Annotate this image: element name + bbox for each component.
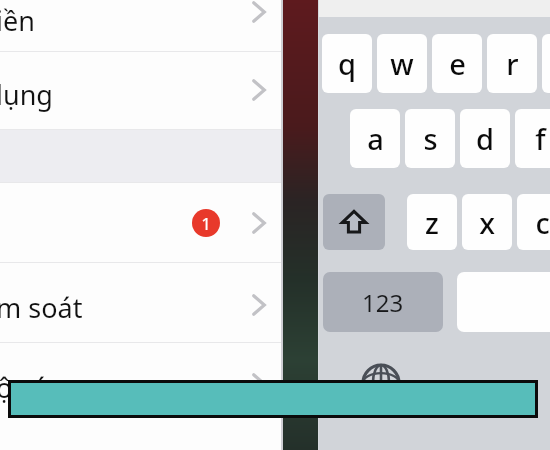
staticText: m soát xyxy=(0,289,83,326)
staticText: 1 xyxy=(201,212,211,235)
button[interactable]: w xyxy=(377,34,427,93)
button[interactable]: 1 xyxy=(0,183,284,263)
staticText: lụng xyxy=(0,76,53,113)
button[interactable]: 123 xyxy=(323,272,443,332)
staticText: x xyxy=(479,203,495,242)
button[interactable]: ộ sáng xyxy=(0,343,284,418)
staticText: z xyxy=(425,203,439,242)
button[interactable]: f xyxy=(515,109,550,168)
staticText: c xyxy=(535,203,550,242)
staticText: d xyxy=(476,119,494,158)
button[interactable]: m soát xyxy=(0,263,284,343)
staticText: e xyxy=(449,44,466,83)
button[interactable]: s xyxy=(405,109,455,168)
staticText: ộ sáng xyxy=(0,369,81,406)
button[interactable] xyxy=(542,34,550,93)
button[interactable]: d xyxy=(460,109,510,168)
button[interactable]: c xyxy=(517,194,550,250)
staticText: iền xyxy=(0,2,35,39)
staticText: q xyxy=(338,44,356,83)
button[interactable]: Change keyboard language xyxy=(358,360,404,406)
button[interactable]: e xyxy=(432,34,482,93)
staticText: w xyxy=(390,44,414,83)
button[interactable]: a xyxy=(350,109,400,168)
staticText: s xyxy=(423,119,438,158)
staticText: a xyxy=(367,119,384,158)
staticText: 123 xyxy=(362,286,404,319)
staticText: f xyxy=(535,119,546,158)
button[interactable]: iền xyxy=(0,0,284,52)
button[interactable]: x xyxy=(462,194,512,250)
button[interactable]: Shift xyxy=(323,194,385,250)
button[interactable]: q xyxy=(322,34,372,93)
button[interactable]: r xyxy=(487,34,537,93)
staticText: r xyxy=(506,44,519,83)
button[interactable]: lụng xyxy=(0,52,284,130)
button[interactable]: z xyxy=(407,194,457,250)
